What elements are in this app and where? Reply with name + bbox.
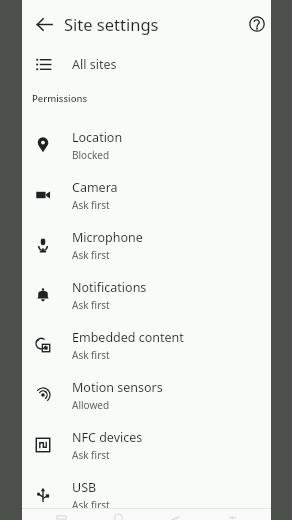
button[interactable]: Help bbox=[243, 10, 271, 38]
staticText: All sites bbox=[72, 56, 117, 73]
button[interactable]: Embedded content bbox=[22, 320, 271, 370]
staticText: Ask first bbox=[72, 498, 110, 512]
staticText: Allowed bbox=[72, 398, 110, 412]
button[interactable]: Notifications bbox=[22, 270, 271, 320]
staticText: Location bbox=[72, 129, 123, 146]
button[interactable]: USB bbox=[22, 470, 271, 520]
staticText: Ask first bbox=[72, 198, 110, 212]
staticText: Notifications bbox=[72, 279, 147, 296]
button[interactable]: Nav item 2 bbox=[90, 509, 147, 520]
staticText: Site settings bbox=[64, 13, 159, 35]
button[interactable]: Motion sensors bbox=[22, 370, 271, 420]
staticText: Microphone bbox=[72, 229, 143, 246]
button[interactable]: Nav item 3 bbox=[147, 509, 204, 520]
staticText: Embedded content bbox=[72, 329, 184, 346]
button[interactable]: All sites bbox=[22, 48, 271, 80]
button[interactable]: Location bbox=[22, 120, 271, 170]
staticText: Camera bbox=[72, 179, 118, 196]
button[interactable]: Nav item 1 bbox=[32, 509, 90, 520]
staticText: Ask first bbox=[72, 348, 110, 362]
staticText: Ask first bbox=[72, 248, 110, 262]
staticText: Ask first bbox=[72, 298, 110, 312]
staticText: Ask first bbox=[72, 448, 110, 462]
staticText: Motion sensors bbox=[72, 379, 163, 396]
button[interactable]: NFC devices bbox=[22, 420, 271, 470]
staticText: NFC devices bbox=[72, 429, 143, 446]
staticText: Blocked bbox=[72, 148, 110, 162]
staticText: Permissions bbox=[32, 92, 88, 105]
button[interactable]: Camera bbox=[22, 170, 271, 220]
button[interactable]: Back bbox=[30, 10, 58, 38]
button[interactable]: Microphone bbox=[22, 220, 271, 270]
button[interactable]: Nav item 4 bbox=[204, 509, 261, 520]
staticText: USB bbox=[72, 479, 97, 496]
